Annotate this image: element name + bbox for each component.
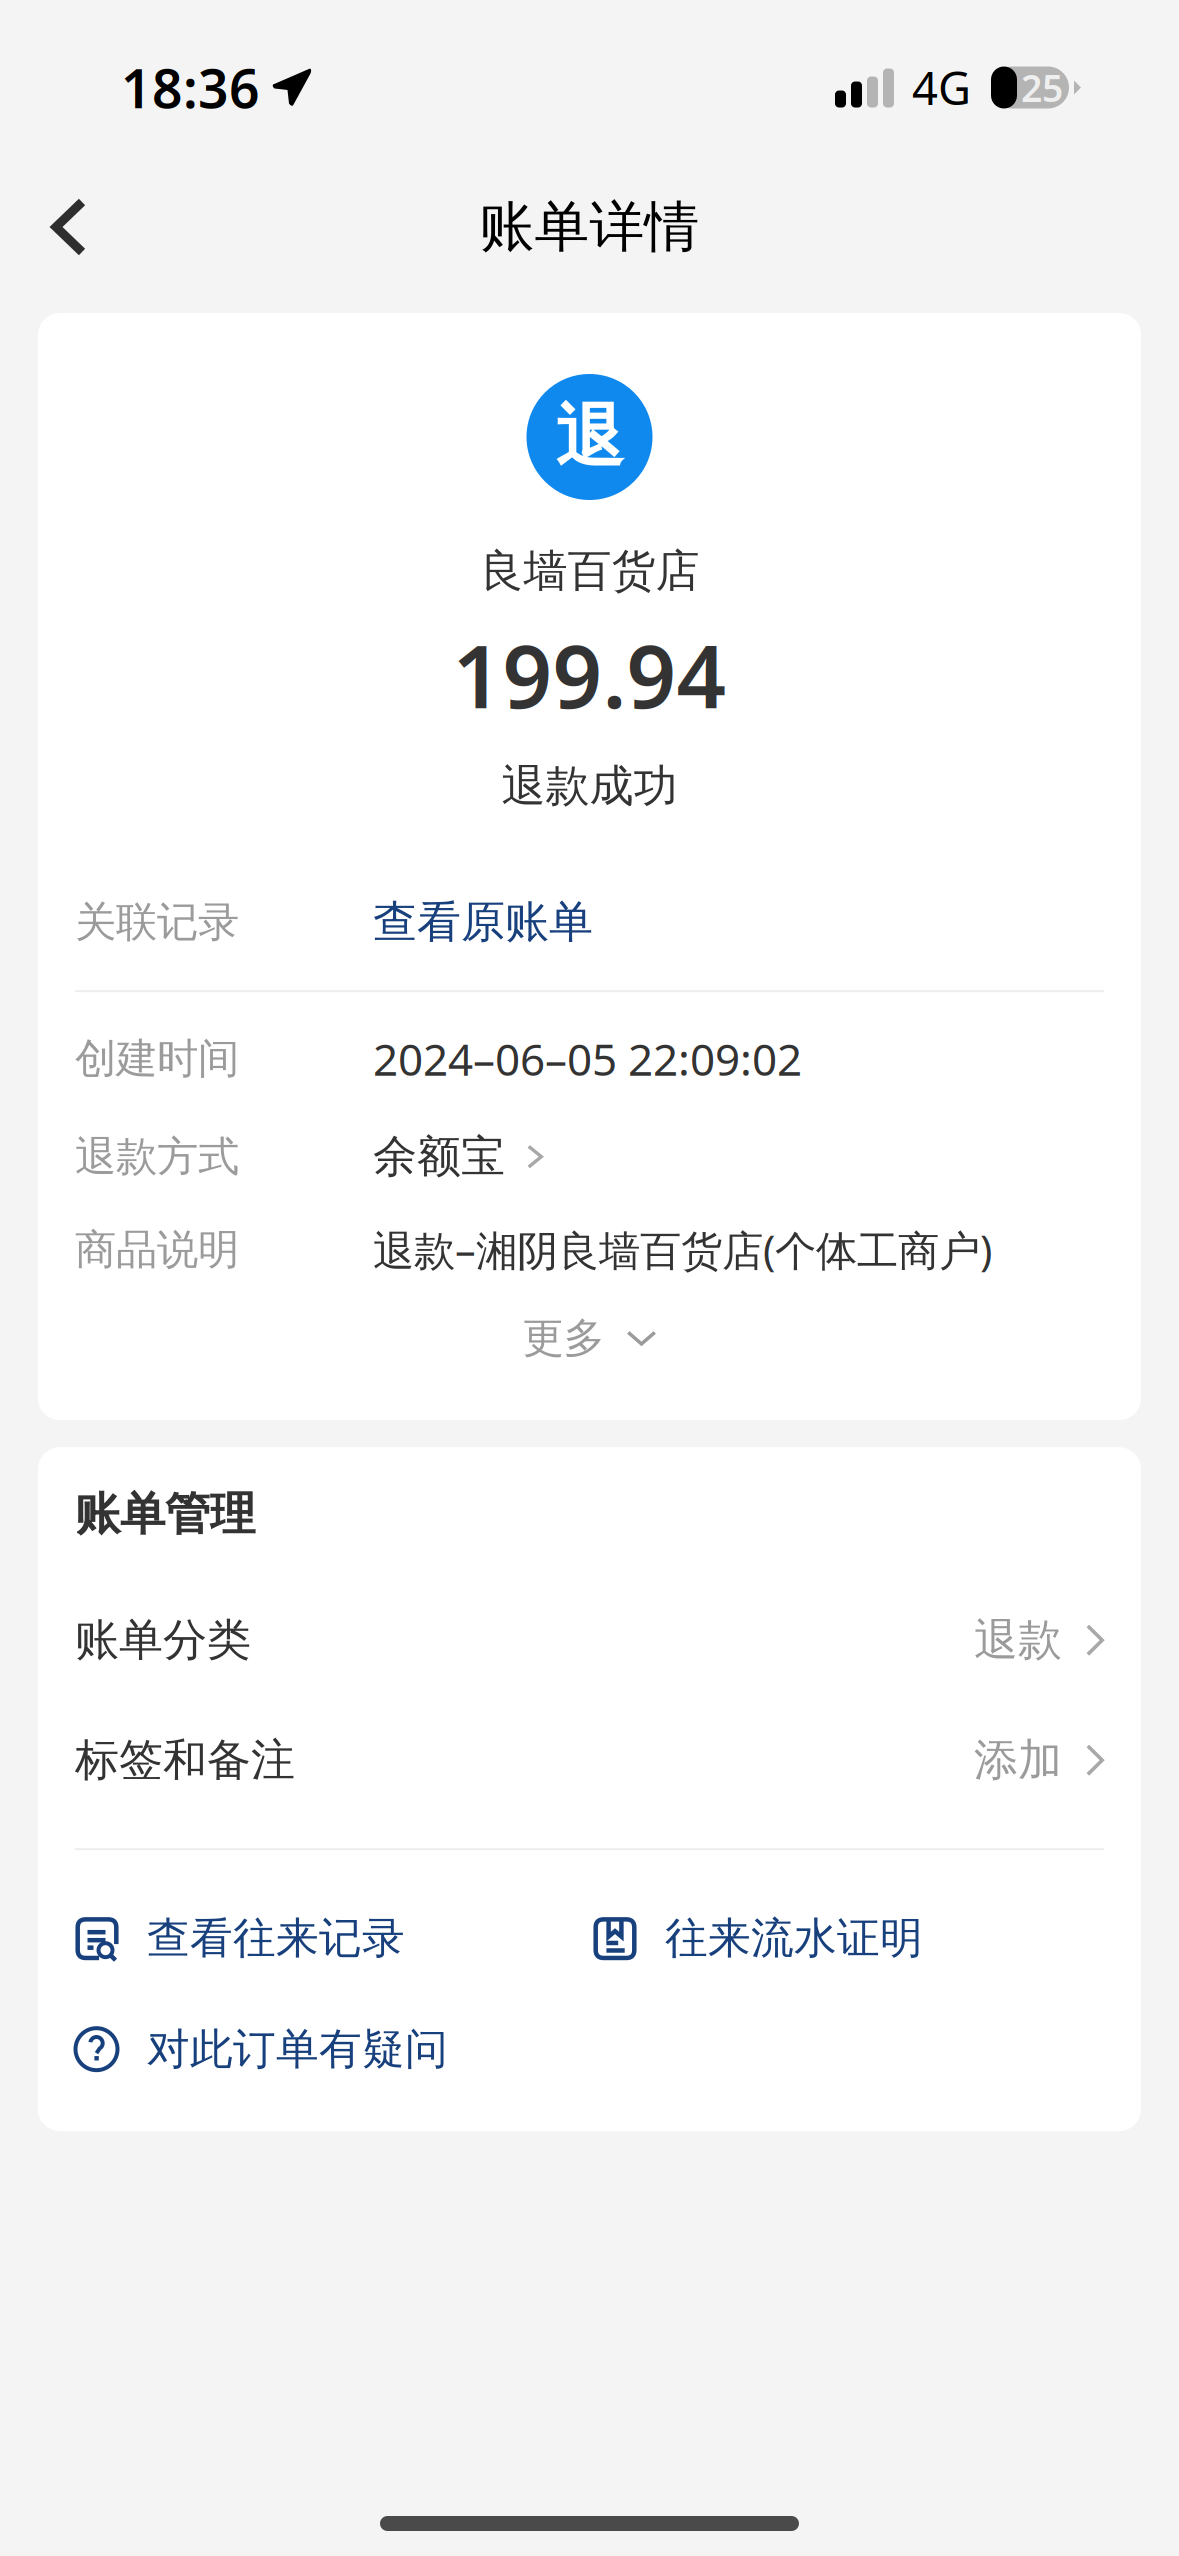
staticText: 添加: [974, 1733, 1062, 1787]
staticText: 账单管理: [75, 1486, 255, 1542]
staticText: 标签和备注: [75, 1733, 295, 1787]
staticText: 退: [555, 395, 623, 479]
staticText: 良墙百货店: [479, 544, 699, 598]
staticText: 4G: [912, 57, 971, 118]
staticText: 退款方式: [75, 1131, 239, 1182]
staticText: 退款: [974, 1613, 1062, 1667]
button[interactable]: 往来流水证明: [593, 1909, 923, 1967]
staticText: 往来流水证明: [665, 1912, 923, 1964]
staticText: 25: [1021, 63, 1063, 112]
staticText: 退款成功: [501, 759, 677, 813]
staticText: 退款–湘阴良墙百货店(个体工商户): [373, 1222, 992, 1277]
staticText: 创建时间: [75, 1033, 239, 1084]
button[interactable]: 余额宝: [373, 1130, 543, 1184]
staticText: 商品说明: [75, 1224, 239, 1275]
staticText: 更多: [522, 1313, 604, 1364]
staticText: 查看原账单: [373, 895, 593, 949]
staticText: 对此订单有疑问: [147, 2023, 448, 2075]
button[interactable]: 标签和备注: [75, 1700, 1104, 1820]
staticText: 查看往来记录: [147, 1912, 405, 1964]
staticText: 关联记录: [75, 897, 239, 948]
button[interactable]: 更多: [75, 1296, 1104, 1380]
button[interactable]: 查看往来记录: [75, 1909, 405, 1967]
staticText: 18:36: [121, 52, 260, 123]
staticText: 199.94: [452, 617, 726, 732]
button[interactable]: 返回: [14, 177, 124, 277]
staticText: 账单分类: [75, 1613, 251, 1667]
staticText: 2024–06–05 22:09:02: [373, 1029, 802, 1088]
button[interactable]: 对此订单有疑问: [75, 2020, 448, 2078]
button[interactable]: 账单分类: [75, 1580, 1104, 1700]
staticText: 余额宝: [373, 1130, 505, 1184]
button[interactable]: 查看原账单: [373, 895, 593, 949]
staticText: 账单详情: [479, 193, 699, 260]
